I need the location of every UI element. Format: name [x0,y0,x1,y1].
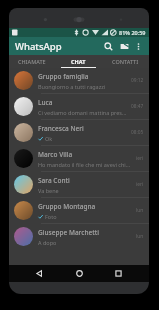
button[interactable]: CHIAMATE [9,55,55,68]
staticText: ieri [136,181,144,188]
staticText: lun [136,207,144,214]
staticText: lun [136,233,144,240]
staticText: Marco Villa [38,150,73,159]
staticText: WhatsApp [15,40,62,53]
button[interactable]: Luca [9,94,149,119]
staticText: CONTATTI [112,58,139,65]
staticText: Luca [38,98,53,107]
button[interactable]: Recent apps [110,265,127,282]
button[interactable]: Sara Conti [9,172,149,197]
staticText: Sara Conti [38,176,70,185]
staticText: Va bene [38,187,59,194]
button[interactable]: Gruppo famiglia [9,68,149,93]
staticText: CHAT [71,58,86,65]
staticText: Francesca Neri [38,124,84,133]
staticText: 08:05 [131,129,144,136]
staticText: Giuseppe Marchetti [38,228,99,237]
button[interactable]: Gruppo Montagna [9,198,149,223]
button[interactable]: New chat [116,38,132,54]
button[interactable]: Search [100,38,116,54]
button[interactable]: Francesca Neri [9,120,149,145]
button[interactable]: Giuseppe Marchetti [9,224,149,249]
button[interactable]: More options [132,40,145,53]
button[interactable]: Marco Villa [9,146,149,171]
button[interactable]: CHAT [55,55,102,68]
staticText: ieri [136,155,144,162]
staticText: CHIAMATE [18,58,46,65]
button[interactable]: Back [31,265,48,282]
staticText: Gruppo famiglia [38,72,89,81]
staticText: Ci vediamo domani mattina presto in uffi… [38,109,128,116]
button[interactable]: Home [71,265,88,282]
button[interactable]: CONTATTI [102,55,149,68]
staticText: Ho mandato il file che mi avevi chiesto … [38,161,133,168]
staticText: Buongiorno a tutti ragazzi [38,83,106,90]
staticText: A dopo [38,239,57,246]
staticText: 08:47 [131,103,144,110]
staticText: Foto [45,213,57,220]
staticText: 81% 20:59 [119,29,146,36]
staticText: Gruppo Montagna [38,202,96,211]
staticText: 09:12 [131,77,144,84]
staticText: Ok [45,135,53,142]
